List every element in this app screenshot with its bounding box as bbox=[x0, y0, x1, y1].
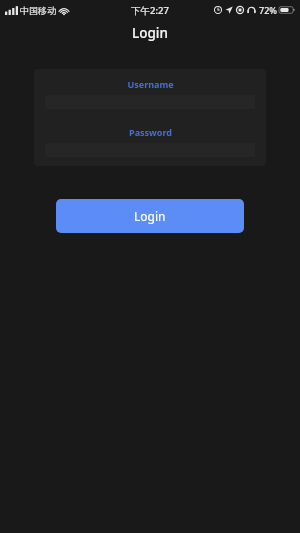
button[interactable]: Login bbox=[56, 199, 244, 233]
staticText: 72% bbox=[259, 4, 277, 16]
staticText: 下午2:27 bbox=[131, 4, 169, 17]
staticText: Login bbox=[132, 24, 168, 42]
staticText: 中国移动 bbox=[20, 5, 56, 16]
staticText: Username bbox=[127, 78, 174, 90]
staticText: Password bbox=[129, 126, 172, 138]
staticText: Login bbox=[134, 208, 166, 224]
